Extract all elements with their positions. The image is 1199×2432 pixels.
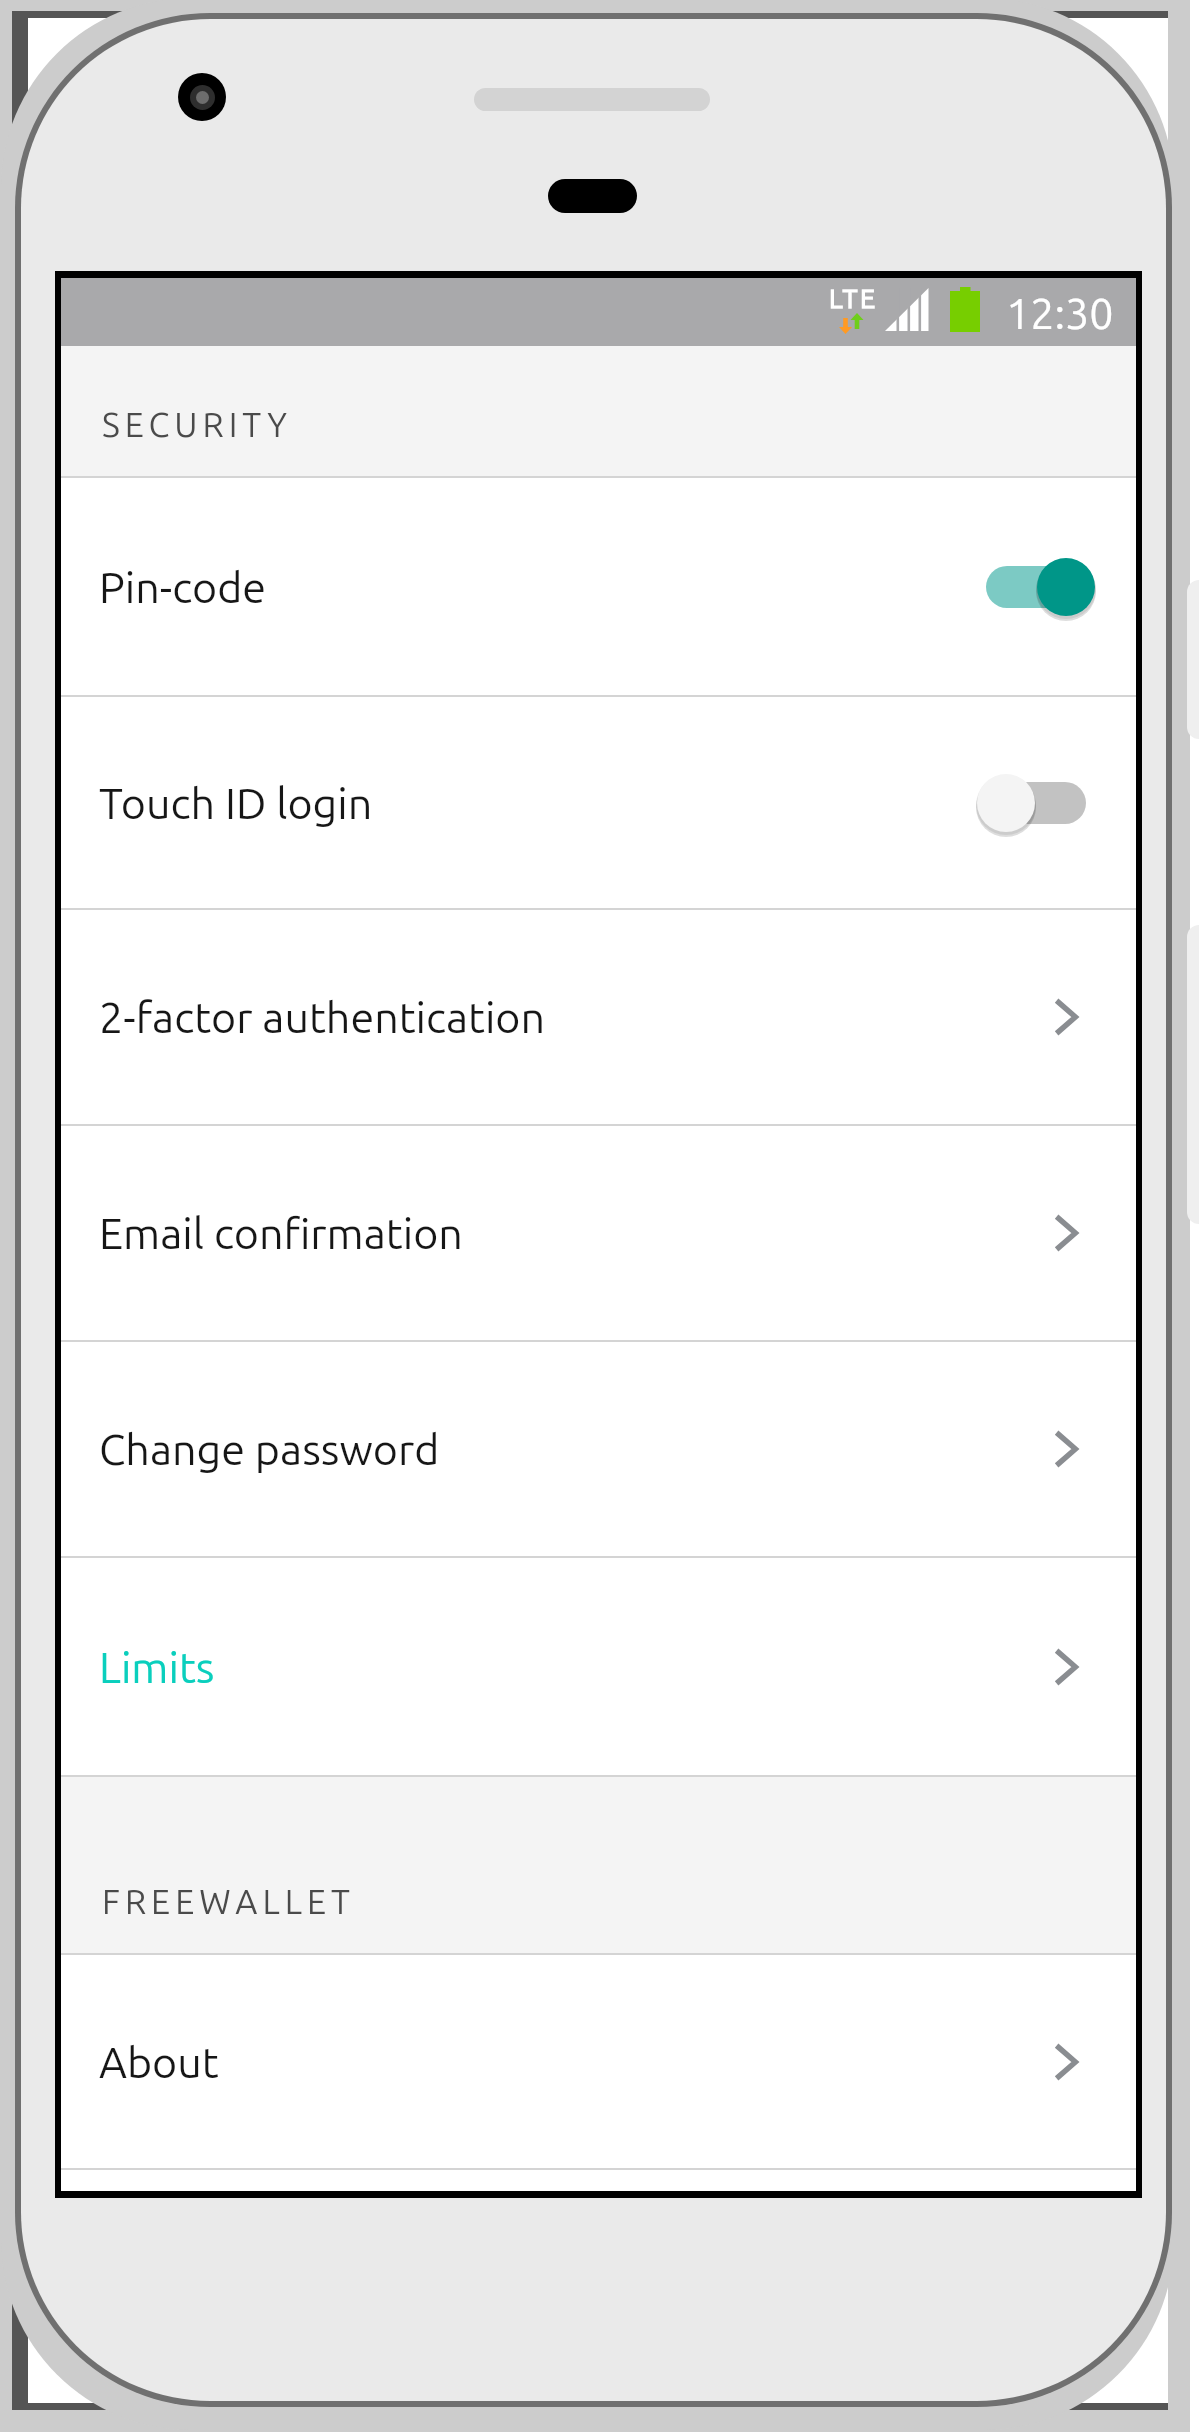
staticText: LTE [829, 283, 878, 313]
button[interactable]: 2-factor authentication [61, 910, 1136, 1124]
staticText: Pin-code [99, 563, 267, 611]
button[interactable]: Change password [61, 1342, 1136, 1556]
button[interactable]: Pin-code [61, 478, 1136, 695]
staticText: 12:30 [1006, 289, 1114, 337]
staticText: SECURITY [102, 405, 292, 443]
other: About [1054, 2043, 1078, 2081]
button[interactable]: About [61, 1955, 1136, 2168]
other: Email confirmation [1054, 1214, 1078, 1252]
button[interactable]: Limits [61, 1558, 1136, 1775]
staticText: About [99, 2038, 219, 2086]
staticText: Touch ID login [99, 779, 373, 827]
staticText: Change password [99, 1425, 440, 1473]
staticText: 2-factor authentication [99, 993, 546, 1041]
other: 2-factor authentication [1054, 998, 1078, 1036]
staticText: FREEWALLET [102, 1882, 355, 1920]
staticText: Email confirmation [99, 1209, 463, 1257]
other: Change password [1054, 1430, 1078, 1468]
other: Limits [1054, 1648, 1078, 1686]
staticText: Limits [99, 1643, 215, 1691]
button[interactable]: Email confirmation [61, 1126, 1136, 1340]
button[interactable]: Touch ID login [61, 697, 1136, 908]
